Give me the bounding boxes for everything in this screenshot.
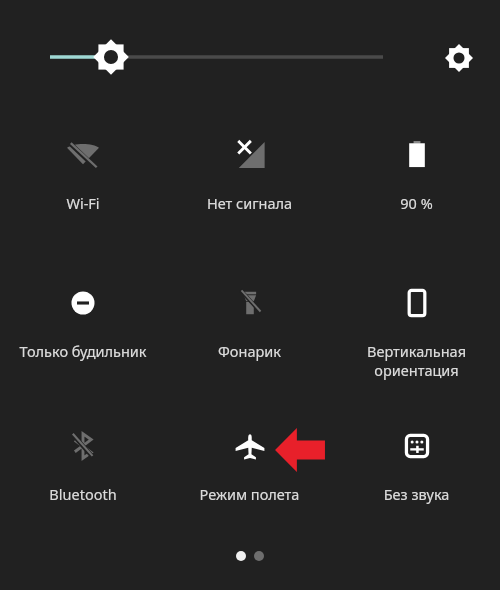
button[interactable]: Режим полета — [166, 422, 333, 504]
staticText: Bluetooth — [4, 484, 162, 504]
staticText: Вертикальная ориентация — [337, 341, 496, 380]
button[interactable]: Page 2 — [254, 551, 264, 561]
staticText: Только будильник — [4, 341, 162, 361]
button[interactable]: Нет сигнала — [166, 131, 333, 213]
button[interactable]: Bluetooth — [0, 422, 166, 504]
button[interactable]: Brightness slider — [40, 36, 430, 78]
button[interactable]: Battery 90 percent — [333, 131, 500, 213]
button[interactable]: Page 1 — [236, 551, 246, 561]
staticText: Без звука — [337, 484, 496, 504]
button[interactable]: Фонарик — [166, 279, 333, 361]
button[interactable]: Без звука — [333, 422, 500, 504]
staticText: Фонарик — [170, 341, 329, 361]
staticText: Режим полета — [170, 484, 329, 504]
staticText: Wi-Fi — [4, 193, 162, 213]
button[interactable]: Wi-Fi — [0, 131, 166, 213]
staticText: 90 % — [337, 193, 496, 213]
button[interactable]: Вертикальная ориентация — [333, 279, 500, 380]
button[interactable]: Auto brightness — [438, 37, 480, 79]
staticText: Нет сигнала — [170, 193, 329, 213]
button[interactable]: Только будильник — [0, 279, 166, 361]
